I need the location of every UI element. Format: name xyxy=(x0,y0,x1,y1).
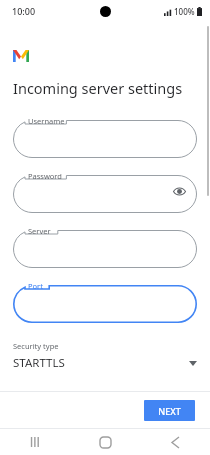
staticText: Incoming server settings xyxy=(13,78,183,98)
staticText: Password xyxy=(28,171,62,181)
staticText: Server xyxy=(28,226,51,236)
staticText: NEXT xyxy=(158,405,181,417)
button[interactable]: Show password xyxy=(169,181,189,201)
button[interactable]: Recent apps xyxy=(0,429,70,455)
button[interactable]: Port xyxy=(13,279,197,323)
staticText: STARTTLS xyxy=(13,355,189,371)
button[interactable]: Back xyxy=(140,429,210,455)
button[interactable]: Security type xyxy=(13,339,197,373)
staticText: 100% xyxy=(174,6,195,17)
staticText: Port xyxy=(28,281,43,291)
button[interactable]: NEXT xyxy=(144,400,195,421)
staticText: 10:00 xyxy=(12,5,36,17)
button[interactable]: Username xyxy=(13,114,197,158)
button[interactable]: Password xyxy=(13,169,197,213)
button[interactable]: Home xyxy=(70,429,140,455)
staticText: Username xyxy=(28,116,65,126)
button[interactable]: Server xyxy=(13,224,197,268)
staticText: Security type xyxy=(13,341,59,351)
